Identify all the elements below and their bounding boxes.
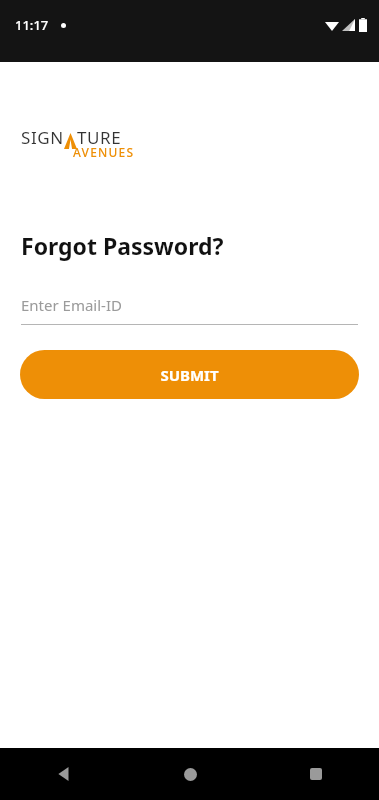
button[interactable]: Recent apps xyxy=(253,748,379,800)
staticText: Enter Email-ID xyxy=(21,295,122,315)
button[interactable]: SUBMIT xyxy=(20,350,359,399)
button[interactable]: Home xyxy=(127,748,253,800)
button[interactable]: Enter Email-ID xyxy=(21,295,358,325)
staticText: AVENUES xyxy=(73,144,135,160)
staticText: 11:17 xyxy=(15,16,49,34)
staticText: SIGN xyxy=(21,126,64,149)
staticText: Forgot Password? xyxy=(21,230,224,261)
button[interactable]: Back xyxy=(0,748,127,800)
staticText: SUBMIT xyxy=(160,365,219,385)
staticText: TURE xyxy=(77,126,122,149)
